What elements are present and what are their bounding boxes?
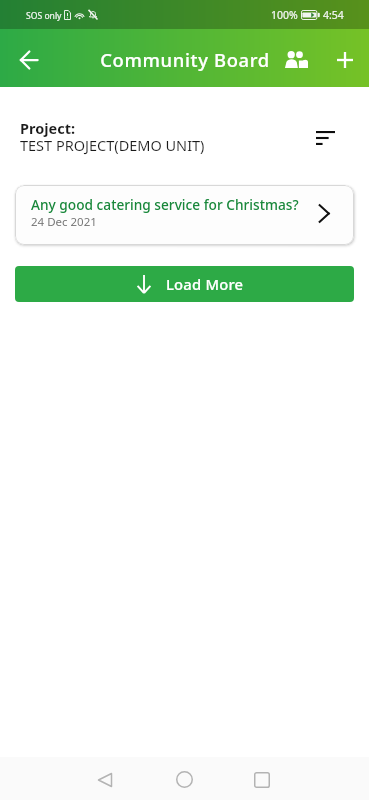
staticText: 100% bbox=[271, 8, 298, 22]
button[interactable]: Home bbox=[164, 757, 204, 800]
button[interactable]: Sort bbox=[307, 120, 343, 156]
button[interactable]: Back bbox=[0, 29, 57, 87]
staticText: Load More bbox=[166, 274, 244, 294]
button[interactable]: Load More bbox=[15, 266, 354, 302]
button[interactable]: Any good catering service for Christmas? bbox=[15, 185, 354, 245]
button[interactable]: Back bbox=[85, 757, 125, 800]
button[interactable]: Recents bbox=[242, 757, 282, 800]
staticText: 4:54 bbox=[323, 8, 344, 22]
staticText: Project: bbox=[20, 118, 76, 138]
staticText: TEST PROJECT(DEMO UNIT) bbox=[20, 135, 205, 155]
staticText: SOS only bbox=[26, 10, 62, 22]
staticText: Any good catering service for Christmas? bbox=[31, 195, 299, 214]
staticText: Community Board bbox=[100, 47, 270, 72]
staticText: 24 Dec 2021 bbox=[31, 214, 97, 230]
button[interactable]: Add bbox=[320, 29, 369, 87]
button[interactable]: Members bbox=[271, 29, 320, 87]
